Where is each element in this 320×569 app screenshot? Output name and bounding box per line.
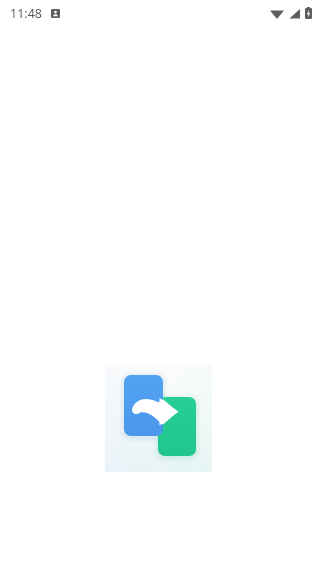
staticText: 11:48 — [10, 5, 42, 22]
button[interactable]: App logo — [105, 365, 212, 472]
other: Battery — [305, 7, 312, 19]
other: Wi-Fi — [270, 8, 284, 19]
other: Mobile signal — [289, 8, 300, 19]
